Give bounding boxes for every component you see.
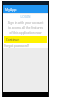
staticText: to access all the features — [2, 26, 49, 30]
staticText: Continue — [6, 38, 19, 42]
button[interactable]: Forgot password? — [4, 44, 30, 48]
staticText: Sign in with your account — [2, 21, 49, 25]
button[interactable]: MyApp — [5, 7, 17, 12]
button[interactable]: Continue — [4, 36, 47, 43]
staticText: of this application now — [2, 31, 49, 35]
staticText: LOGIN — [2, 15, 49, 19]
